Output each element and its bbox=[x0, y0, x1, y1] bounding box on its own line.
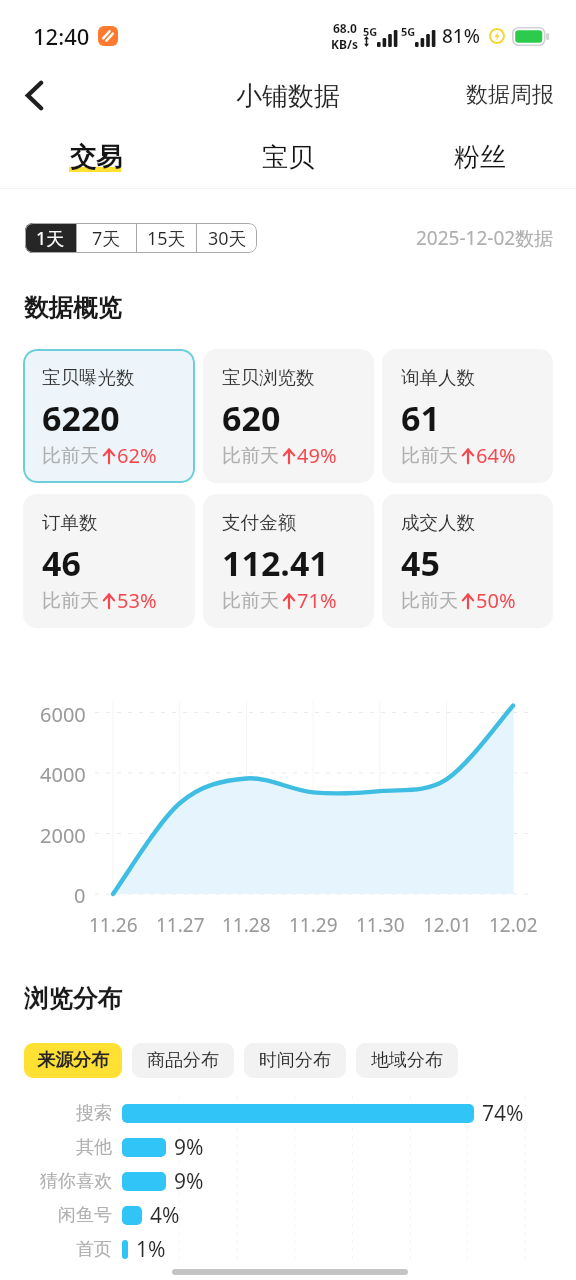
staticText: 30天 bbox=[208, 226, 247, 251]
staticText: 支付金额 bbox=[222, 511, 296, 534]
button[interactable]: 15天 bbox=[137, 223, 196, 253]
staticText: 猜你喜欢 bbox=[40, 1170, 112, 1193]
staticText: 9% bbox=[174, 1167, 204, 1196]
button[interactable]: 数据周报 bbox=[444, 69, 576, 121]
staticText: 4% bbox=[150, 1201, 180, 1230]
button[interactable]: Back bbox=[8, 69, 60, 121]
staticText: 首页 bbox=[76, 1238, 112, 1261]
staticText: 112.41 bbox=[222, 540, 329, 586]
staticText: 9% bbox=[174, 1133, 204, 1162]
staticText: 4000 bbox=[40, 761, 86, 788]
staticText: 宝贝曝光数 bbox=[42, 366, 135, 389]
staticText: 11.28 bbox=[222, 912, 271, 938]
staticText: 2025-12-02数据 bbox=[416, 225, 554, 251]
staticText: 订单数 bbox=[42, 511, 98, 534]
button[interactable]: 订单数 bbox=[23, 494, 195, 628]
staticText: 比前天 bbox=[401, 444, 458, 468]
button[interactable]: 交易 bbox=[32, 126, 160, 188]
staticText: 15天 bbox=[147, 226, 186, 251]
staticText: 宝贝浏览数 bbox=[222, 366, 315, 389]
staticText: 浏览分布 bbox=[24, 983, 122, 1014]
staticText: 6000 bbox=[40, 701, 86, 728]
button[interactable]: 宝贝 bbox=[224, 126, 352, 188]
staticText: 61 bbox=[401, 395, 440, 441]
staticText: 0 bbox=[74, 882, 86, 909]
button[interactable]: 来源分布 bbox=[24, 1043, 122, 1078]
staticText: 71% bbox=[297, 587, 337, 614]
staticText: 46 bbox=[42, 540, 81, 586]
staticText: 81% bbox=[442, 23, 480, 49]
staticText: KB/s bbox=[331, 36, 358, 52]
staticText: 12.02 bbox=[489, 912, 538, 938]
staticText: 11.29 bbox=[289, 912, 338, 938]
staticText: 5G bbox=[363, 24, 378, 39]
staticText: 宝贝 bbox=[262, 141, 314, 174]
staticText: 来源分布 bbox=[37, 1049, 109, 1072]
staticText: 成交人数 bbox=[401, 511, 475, 534]
staticText: 49% bbox=[297, 442, 337, 469]
staticText: 5G bbox=[401, 24, 416, 39]
staticText: 7天 bbox=[92, 226, 121, 251]
staticText: 小铺数据 bbox=[236, 80, 340, 113]
staticText: 时间分布 bbox=[259, 1049, 331, 1072]
staticText: 1天 bbox=[36, 226, 65, 251]
staticText: 45 bbox=[401, 540, 440, 586]
button[interactable]: 时间分布 bbox=[244, 1043, 346, 1078]
button[interactable]: 成交人数 bbox=[382, 494, 553, 628]
staticText: 闲鱼号 bbox=[58, 1204, 112, 1227]
button[interactable]: 1天 bbox=[25, 223, 76, 253]
staticText: 12.01 bbox=[423, 912, 472, 938]
staticText: 比前天 bbox=[42, 589, 99, 613]
button[interactable]: 支付金额 bbox=[203, 494, 374, 628]
staticText: 53% bbox=[117, 587, 157, 614]
button[interactable]: 宝贝曝光数 bbox=[23, 349, 195, 483]
staticText: 比前天 bbox=[401, 589, 458, 613]
button[interactable]: 7天 bbox=[77, 223, 136, 253]
staticText: 交易 bbox=[70, 141, 122, 174]
staticText: 1% bbox=[136, 1235, 166, 1264]
staticText: 62% bbox=[117, 442, 157, 469]
staticText: 64% bbox=[476, 442, 516, 469]
staticText: 商品分布 bbox=[147, 1049, 219, 1072]
staticText: 11.26 bbox=[89, 912, 138, 938]
staticText: 比前天 bbox=[42, 444, 99, 468]
staticText: 地域分布 bbox=[371, 1049, 443, 1072]
staticText: 2000 bbox=[40, 822, 86, 849]
staticText: 比前天 bbox=[222, 589, 279, 613]
button[interactable]: 地域分布 bbox=[356, 1043, 458, 1078]
staticText: 粉丝 bbox=[454, 141, 506, 174]
staticText: 其他 bbox=[76, 1136, 112, 1159]
staticText: 620 bbox=[222, 395, 281, 441]
staticText: 74% bbox=[482, 1099, 524, 1128]
staticText: 比前天 bbox=[222, 444, 279, 468]
staticText: 11.27 bbox=[156, 912, 205, 938]
staticText: 68.0 bbox=[333, 20, 357, 36]
button[interactable]: 30天 bbox=[197, 223, 257, 253]
staticText: 11.30 bbox=[356, 912, 405, 938]
button[interactable]: 询单人数 bbox=[382, 349, 553, 483]
button[interactable]: 商品分布 bbox=[132, 1043, 234, 1078]
staticText: 12:40 bbox=[33, 21, 90, 51]
staticText: 50% bbox=[476, 587, 516, 614]
button[interactable]: 粉丝 bbox=[416, 126, 544, 188]
staticText: 6220 bbox=[42, 395, 120, 441]
staticText: 数据概览 bbox=[24, 292, 122, 323]
button[interactable]: 宝贝浏览数 bbox=[203, 349, 374, 483]
staticText: 搜索 bbox=[76, 1102, 112, 1125]
staticText: 询单人数 bbox=[401, 366, 475, 389]
staticText: 数据周报 bbox=[466, 81, 554, 109]
